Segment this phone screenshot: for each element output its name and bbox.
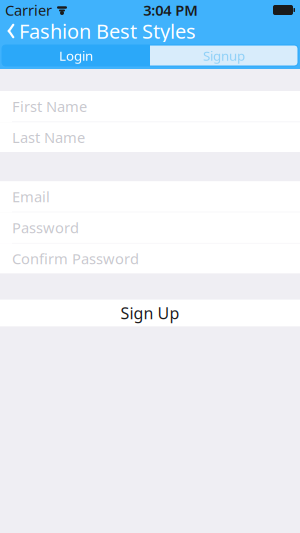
staticText: Password	[12, 218, 79, 237]
button[interactable]: Login	[2, 45, 150, 66]
staticText: Confirm Password	[12, 249, 139, 268]
staticText: Email	[12, 187, 50, 206]
staticText: Fashion Best Styles	[19, 18, 196, 44]
staticText: Signup	[203, 47, 245, 64]
button[interactable]: Fashion Best Styles	[0, 20, 204, 42]
staticText: Sign Up	[120, 302, 179, 324]
staticText: Last Name	[12, 127, 85, 147]
staticText: Carrier	[5, 0, 52, 20]
staticText: Login	[59, 47, 93, 64]
staticText: First Name	[12, 96, 87, 116]
button[interactable]: Signup	[150, 45, 298, 66]
button[interactable]: Sign Up	[0, 300, 300, 327]
staticText: 3:04 PM	[143, 0, 198, 20]
